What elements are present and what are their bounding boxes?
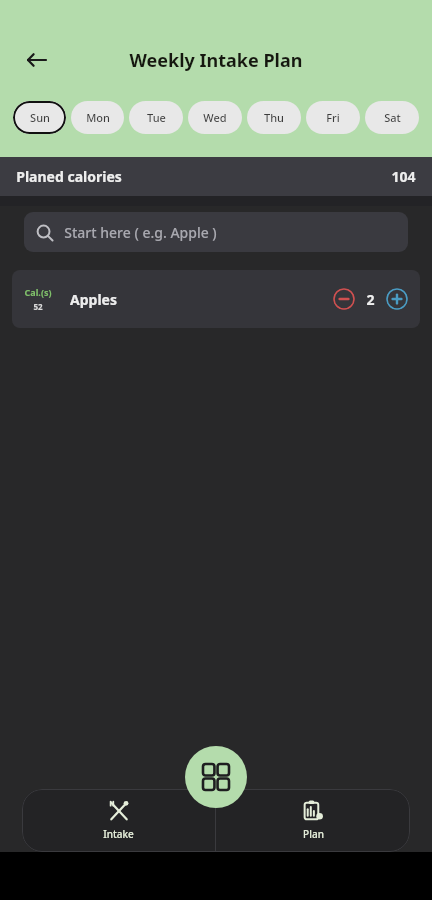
staticText: Weekly Intake Plan	[0, 48, 432, 73]
button[interactable]: Decrease	[333, 288, 355, 310]
button[interactable]: Cal.(s)	[12, 270, 420, 328]
staticText: 52	[33, 301, 43, 312]
staticText: Wed	[203, 110, 227, 125]
button[interactable]: Wed	[188, 101, 242, 134]
button[interactable]: Back	[18, 42, 54, 78]
button[interactable]: Mon	[71, 101, 124, 134]
staticText: Sat	[384, 110, 401, 125]
button[interactable]: Plan	[216, 789, 410, 852]
staticText: Mon	[86, 110, 110, 125]
button[interactable]: Thu	[247, 101, 301, 134]
staticText: Start here ( e.g. Apple )	[64, 223, 217, 242]
staticText: Apples	[70, 290, 117, 309]
staticText: Thu	[264, 110, 284, 125]
staticText: Planed calories	[16, 167, 122, 186]
staticText: 104	[391, 167, 416, 186]
button[interactable]: Tue	[129, 101, 183, 134]
button[interactable]: Increase	[386, 288, 408, 310]
button[interactable]: Sun	[13, 101, 66, 134]
button[interactable]: Sat	[365, 101, 419, 134]
button[interactable]: Start here ( e.g. Apple )	[24, 212, 408, 252]
button[interactable]: Fri	[306, 101, 360, 134]
staticText: Fri	[326, 110, 340, 125]
staticText: 2	[366, 290, 375, 309]
staticText: Intake	[103, 827, 134, 841]
staticText: Sun	[30, 110, 50, 125]
button[interactable]: Intake	[22, 789, 215, 852]
button[interactable]: Dashboard	[185, 746, 247, 808]
staticText: Plan	[303, 827, 324, 841]
staticText: Tue	[147, 110, 166, 125]
staticText: Cal.(s)	[24, 286, 52, 298]
